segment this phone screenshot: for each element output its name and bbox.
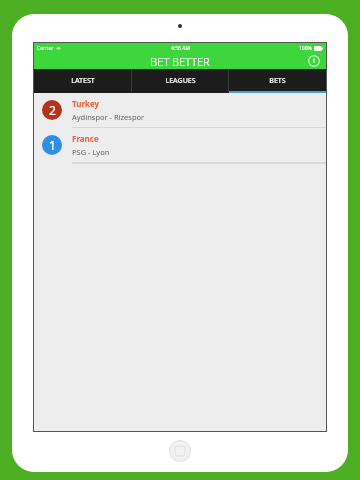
staticText: Turkey <box>72 98 100 109</box>
staticText: 1 <box>49 137 56 153</box>
staticText: i <box>313 56 315 66</box>
staticText: France <box>72 133 99 144</box>
staticText: LEAGUES <box>165 76 196 86</box>
staticText: 100% <box>299 45 312 52</box>
button[interactable]: Info <box>308 55 320 67</box>
staticText: BET BETTER <box>150 54 210 69</box>
staticText: LATEST <box>71 76 95 86</box>
button[interactable]: LATEST <box>34 69 132 93</box>
staticText: Aydinspor - Rizespor <box>72 112 145 122</box>
button[interactable]: 1 <box>34 128 326 163</box>
staticText: PSG - Lyon <box>72 147 110 157</box>
staticText: Carrier <box>37 45 54 52</box>
staticText: BETS <box>269 76 286 86</box>
staticText: 2 <box>49 102 56 118</box>
button[interactable]: 2 <box>34 93 326 128</box>
staticText: 4:56 AM <box>171 45 190 52</box>
button[interactable]: BETS <box>229 69 326 93</box>
button[interactable]: LEAGUES <box>132 69 229 93</box>
